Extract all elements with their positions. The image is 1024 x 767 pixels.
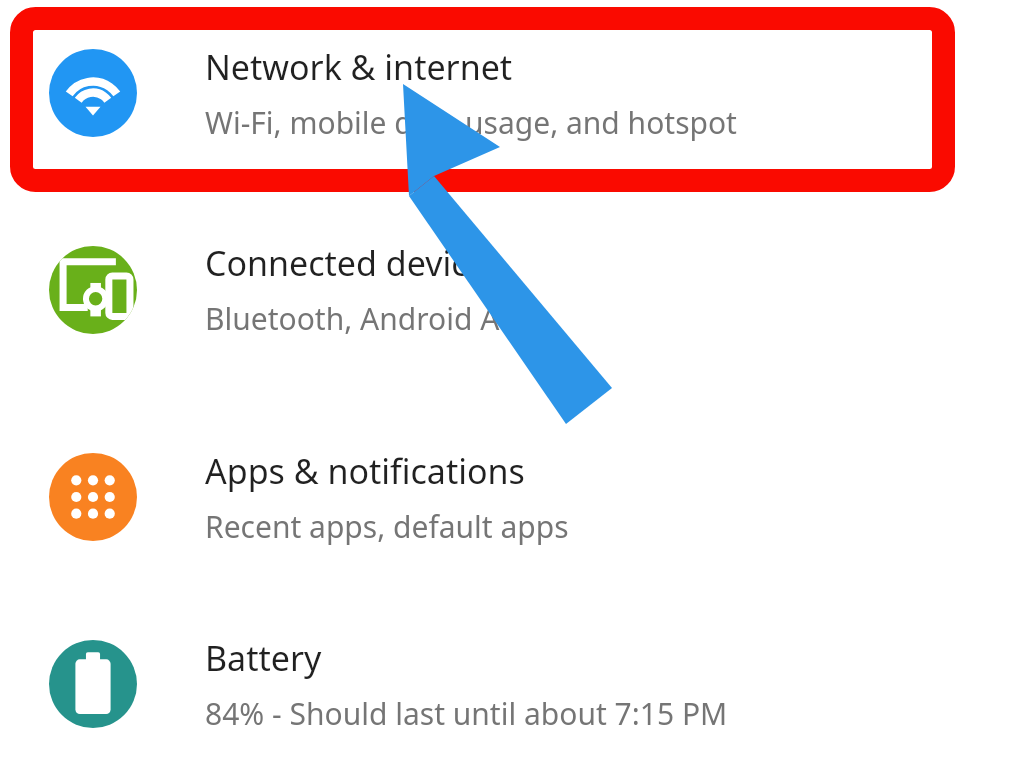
button[interactable]: Network & internet (0, 0, 1024, 186)
staticText: Battery (205, 635, 322, 681)
staticText: Apps & notifications (205, 448, 525, 494)
button[interactable]: Battery (0, 601, 1024, 767)
staticText: Bluetooth, Android Auto (205, 298, 547, 339)
staticText: 84% - Should last until about 7:15 PM (205, 693, 728, 734)
staticText: Wi-Fi, mobile data usage, and hotspot (205, 102, 737, 143)
button[interactable]: Connected devices (0, 186, 1024, 393)
button[interactable]: Apps & notifications (0, 393, 1024, 601)
staticText: Connected devices (205, 240, 504, 286)
staticText: Recent apps, default apps (205, 506, 569, 547)
staticText: Network & internet (205, 44, 513, 90)
